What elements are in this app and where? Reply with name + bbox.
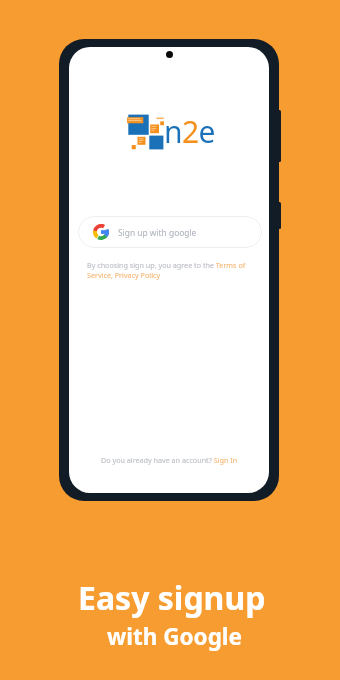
button[interactable]: Do you already have an account? Sign In bbox=[101, 455, 238, 465]
button[interactable]: Sign up with google bbox=[78, 216, 262, 248]
staticText: n2e bbox=[164, 111, 215, 152]
staticText: Do you already have an account? Sign In bbox=[101, 455, 238, 465]
staticText: By choosing sign up, you agree to the Te… bbox=[87, 260, 255, 280]
staticText: Easy signup bbox=[78, 576, 266, 620]
staticText: with Google bbox=[107, 621, 243, 652]
staticText: Sign up with google bbox=[118, 227, 197, 238]
